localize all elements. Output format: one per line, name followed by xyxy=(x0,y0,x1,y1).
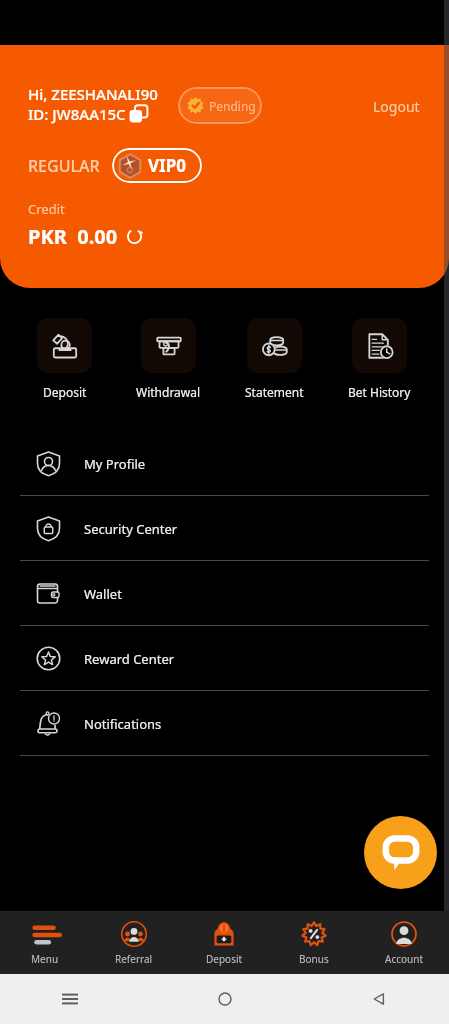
button[interactable]: Live chat xyxy=(364,816,437,889)
staticText: Bonus xyxy=(299,952,329,966)
button[interactable]: Account xyxy=(359,911,449,974)
staticText: Withdrawal xyxy=(136,384,201,400)
button[interactable]: VIP0 xyxy=(112,148,202,183)
button[interactable]: Withdrawal xyxy=(136,318,201,400)
button[interactable]: Referral xyxy=(89,911,179,974)
button[interactable]: Deposit xyxy=(179,911,269,974)
button[interactable]: Bet History xyxy=(348,318,411,400)
staticText: Security Center xyxy=(84,520,178,538)
button[interactable]: Reward Center xyxy=(0,626,449,691)
staticText: Reward Center xyxy=(84,650,175,668)
button[interactable]: My Profile xyxy=(0,431,449,496)
button[interactable]: Bonus xyxy=(269,911,359,974)
button[interactable]: Logout xyxy=(373,97,420,116)
staticText: Credit xyxy=(28,200,65,218)
button[interactable]: Pending xyxy=(178,87,262,124)
staticText: Wallet xyxy=(84,585,122,603)
staticText: ID: JW8AA15C xyxy=(28,104,126,124)
button[interactable]: Menu xyxy=(0,911,89,974)
staticText: Referral xyxy=(115,952,153,966)
button[interactable]: Copy ID xyxy=(129,104,149,124)
button[interactable]: Refresh balance xyxy=(126,228,143,245)
staticText: Bet History xyxy=(348,384,411,400)
staticText: My Profile xyxy=(84,455,146,473)
staticText: PKR 0.00 xyxy=(28,223,118,250)
button[interactable]: Statement xyxy=(245,318,304,400)
staticText: Statement xyxy=(245,384,304,400)
staticText: Deposit xyxy=(43,384,87,400)
staticText: Pending xyxy=(209,98,256,114)
staticText: Deposit xyxy=(206,952,243,966)
button[interactable]: Deposit xyxy=(37,318,92,400)
button[interactable]: Wallet xyxy=(0,561,449,626)
staticText: Menu xyxy=(31,952,59,966)
staticText: Logout xyxy=(373,97,420,116)
button[interactable]: Notifications xyxy=(0,691,449,756)
staticText: Notifications xyxy=(84,715,162,733)
staticText: VIP0 xyxy=(148,154,186,177)
staticText: REGULAR xyxy=(28,155,100,177)
staticText: Hi, ZEESHANALI90 xyxy=(28,84,158,104)
staticText: Account xyxy=(385,952,424,966)
button[interactable]: Security Center xyxy=(0,496,449,561)
